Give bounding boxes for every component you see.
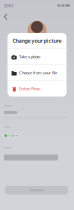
button[interactable] — [5, 186, 68, 194]
button[interactable]: Profile photo — [27, 21, 46, 40]
staticText: Take a photo — [19, 54, 40, 59]
staticText: Choose from your file — [19, 70, 57, 75]
staticText: Change your picture — [12, 37, 61, 44]
staticText: Delete Photo — [19, 86, 40, 91]
button[interactable]: Take a photo — [7, 49, 66, 64]
button[interactable]: Choose from your file — [7, 65, 66, 80]
button[interactable] — [3, 133, 10, 138]
button[interactable]: Back — [3, 13, 8, 21]
button[interactable]: Delete Photo — [7, 81, 66, 96]
button[interactable] — [10, 133, 19, 138]
staticText: 9:41 — [4, 2, 14, 9]
